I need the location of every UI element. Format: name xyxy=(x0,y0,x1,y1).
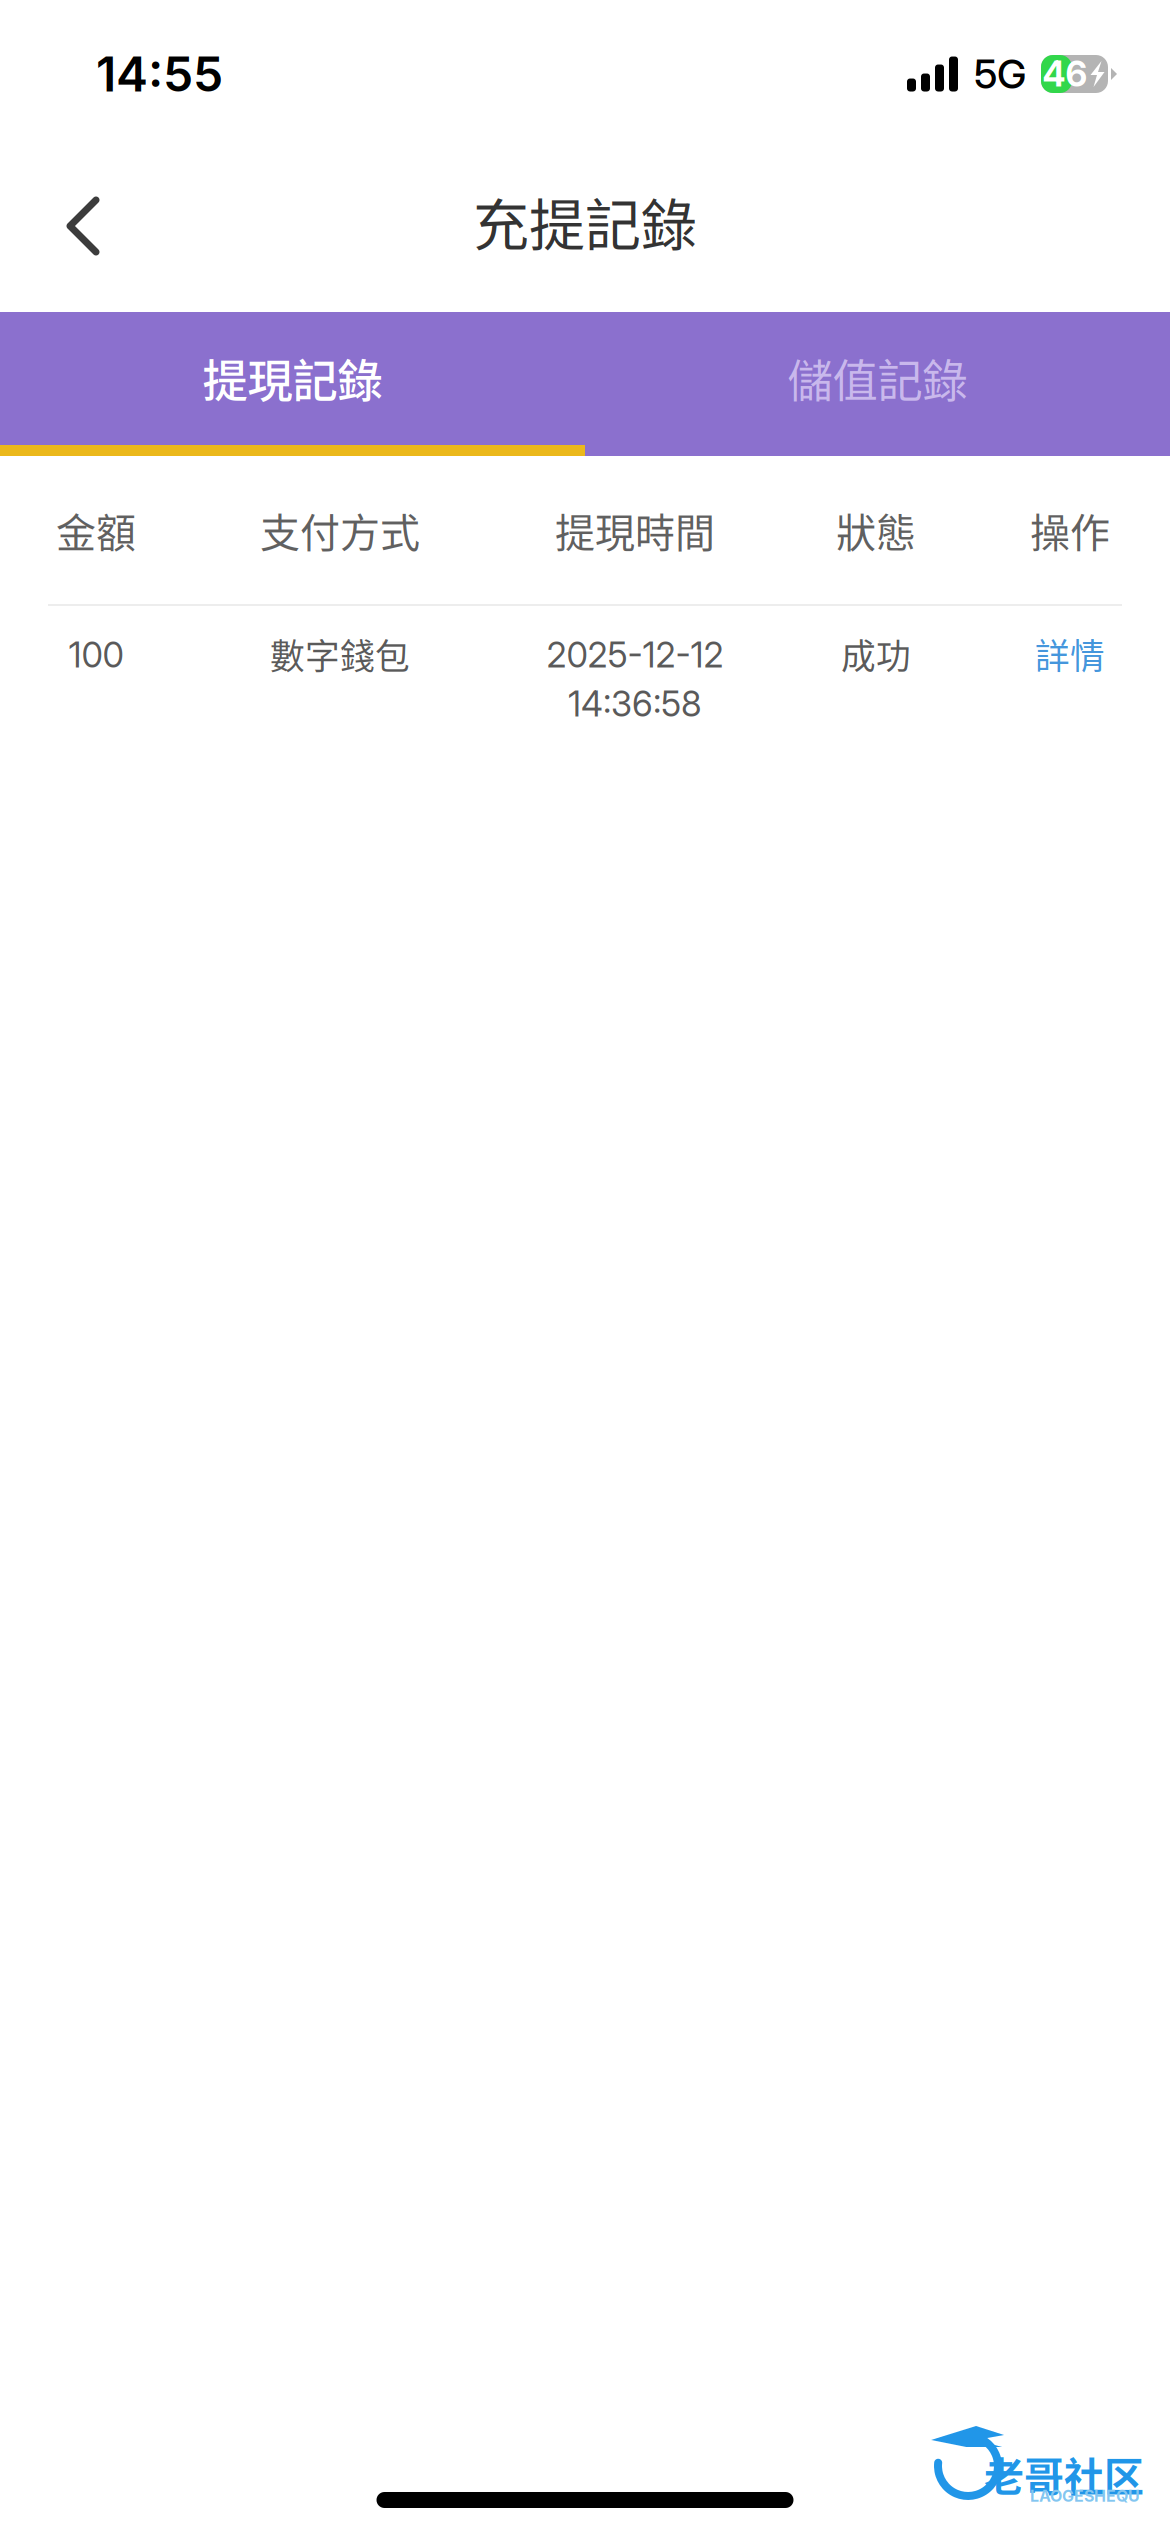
staticText: 支付方式 xyxy=(260,501,420,559)
staticText: 提現記錄 xyxy=(202,345,382,411)
staticText: 2025-12-12 xyxy=(546,634,723,676)
staticText: 操作 xyxy=(1030,501,1110,559)
staticText: 充提記錄 xyxy=(473,180,697,262)
staticText: 46 xyxy=(1042,53,1087,95)
button[interactable]: 儲值記錄 xyxy=(585,312,1170,456)
staticText: 成功 xyxy=(841,629,911,679)
staticText: 老哥社区 xyxy=(984,2445,1144,2503)
button[interactable]: 提現記錄 xyxy=(0,312,585,456)
staticText: 5G xyxy=(974,50,1026,98)
staticText: 14:36:58 xyxy=(568,683,702,725)
staticText: 14:55 xyxy=(96,45,223,103)
button[interactable]: 詳情 xyxy=(970,634,1170,677)
staticText: 詳情 xyxy=(1035,629,1105,679)
staticText: 金額 xyxy=(56,501,136,559)
staticText: 狀態 xyxy=(836,501,916,559)
button[interactable]: Back xyxy=(0,164,145,288)
staticText: 提現時間 xyxy=(555,501,715,559)
staticText: 儲值記錄 xyxy=(787,345,967,411)
staticText: 數字錢包 xyxy=(270,629,410,679)
staticText: 100 xyxy=(68,634,123,676)
staticText: LAOGESHEQU xyxy=(1030,2486,1140,2506)
